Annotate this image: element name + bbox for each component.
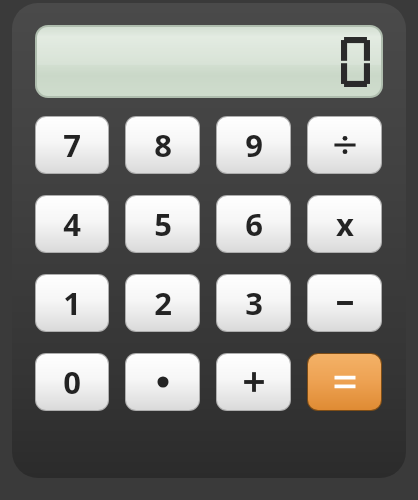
button[interactable]: Equals [308, 354, 381, 410]
button[interactable]: 2 [126, 275, 199, 331]
staticText: 9 [245, 124, 263, 166]
button[interactable]: Add [217, 354, 290, 410]
staticText: 3 [245, 282, 263, 324]
button[interactable]: 9 [217, 117, 290, 173]
button[interactable]: 0 [36, 354, 108, 410]
staticText: x [336, 203, 354, 245]
staticText: 2 [154, 282, 172, 324]
button[interactable]: Divide [308, 117, 381, 173]
staticText: 1 [63, 282, 81, 324]
button[interactable]: Decimal point [126, 354, 199, 410]
button[interactable]: Multiply [308, 196, 381, 252]
button[interactable]: 5 [126, 196, 199, 252]
button[interactable]: 1 [36, 275, 108, 331]
staticText: 7 [63, 124, 81, 166]
button[interactable]: 4 [36, 196, 108, 252]
staticText: 6 [245, 203, 263, 245]
button[interactable]: Subtract [308, 275, 381, 331]
button[interactable]: 3 [217, 275, 290, 331]
button[interactable]: 8 [126, 117, 199, 173]
button[interactable]: 7 [36, 117, 108, 173]
staticText: 0 [63, 361, 81, 403]
staticText: 5 [154, 203, 172, 245]
staticText: 8 [154, 124, 172, 166]
staticText: 4 [63, 203, 81, 245]
button[interactable]: 6 [217, 196, 290, 252]
